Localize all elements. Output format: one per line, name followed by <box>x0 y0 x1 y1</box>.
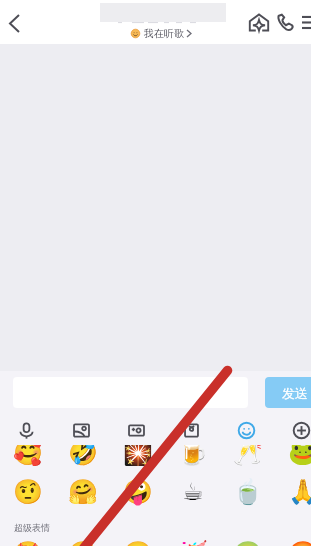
staticText: 🤩 <box>13 540 43 546</box>
button[interactable]: 🍵 <box>232 477 264 507</box>
staticText: 发送 <box>282 385 308 401</box>
button[interactable]: 发送 <box>265 377 311 408</box>
button[interactable]: Sticker <box>176 415 206 445</box>
button[interactable]: 🥂 <box>232 445 264 468</box>
button[interactable]: 🥳 <box>177 539 209 546</box>
staticText: 🤪 <box>123 478 153 506</box>
staticText: 🎇 <box>123 445 153 467</box>
button[interactable]: 🤪 <box>122 477 154 507</box>
button[interactable]: Emoji <box>231 415 261 445</box>
staticText: 我在听歌 <box>144 27 184 40</box>
button[interactable]: Call <box>274 9 297 35</box>
button[interactable]: Home party <box>245 9 272 35</box>
staticText: 🥳 <box>178 540 208 546</box>
button[interactable]: 🤗 <box>67 477 99 507</box>
staticText: 🍵 <box>233 478 263 506</box>
button[interactable]: Photo <box>66 415 96 445</box>
staticText: 🙏 <box>288 478 311 506</box>
button[interactable]: 🤢 <box>232 539 264 546</box>
staticText: 🤣 <box>68 445 98 467</box>
staticText: 🤗 <box>68 478 98 506</box>
staticText: 🤬 <box>288 540 311 546</box>
button[interactable]: More options <box>301 13 311 31</box>
staticText: 🍺 <box>178 445 208 467</box>
button[interactable]: Camera <box>121 415 151 445</box>
button[interactable]: 🍺 <box>177 445 209 468</box>
button[interactable] <box>13 377 248 408</box>
button[interactable]: 🤭 <box>67 539 99 546</box>
staticText: 超级表情 <box>14 522 50 533</box>
button[interactable]: ☕ <box>177 477 209 507</box>
staticText: 🥂 <box>233 445 263 467</box>
button[interactable]: 🙏 <box>287 477 311 507</box>
button[interactable]: 🤨 <box>12 477 44 507</box>
button[interactable]: Back <box>0 8 30 39</box>
button[interactable]: 🙂 <box>122 539 154 546</box>
staticText: ☕ <box>182 478 204 506</box>
button[interactable]: 🥰 <box>12 445 44 468</box>
staticText: 🤭 <box>68 540 98 546</box>
button[interactable]: 🤣 <box>67 445 99 468</box>
button[interactable]: Voice <box>11 415 41 445</box>
button[interactable]: 我在听歌 <box>131 26 191 40</box>
staticText: 🤢 <box>233 540 263 546</box>
staticText: 🥰 <box>13 445 43 467</box>
button[interactable]: 🐸 <box>287 445 311 468</box>
button[interactable]: 🤩 <box>12 539 44 546</box>
staticText: 🙂 <box>123 540 153 546</box>
button[interactable]: 🤬 <box>287 539 311 546</box>
staticText: 🐸 <box>288 445 311 467</box>
staticText: 🤨 <box>13 478 43 506</box>
button[interactable]: More options <box>286 415 311 445</box>
button[interactable]: 🎇 <box>122 445 154 468</box>
